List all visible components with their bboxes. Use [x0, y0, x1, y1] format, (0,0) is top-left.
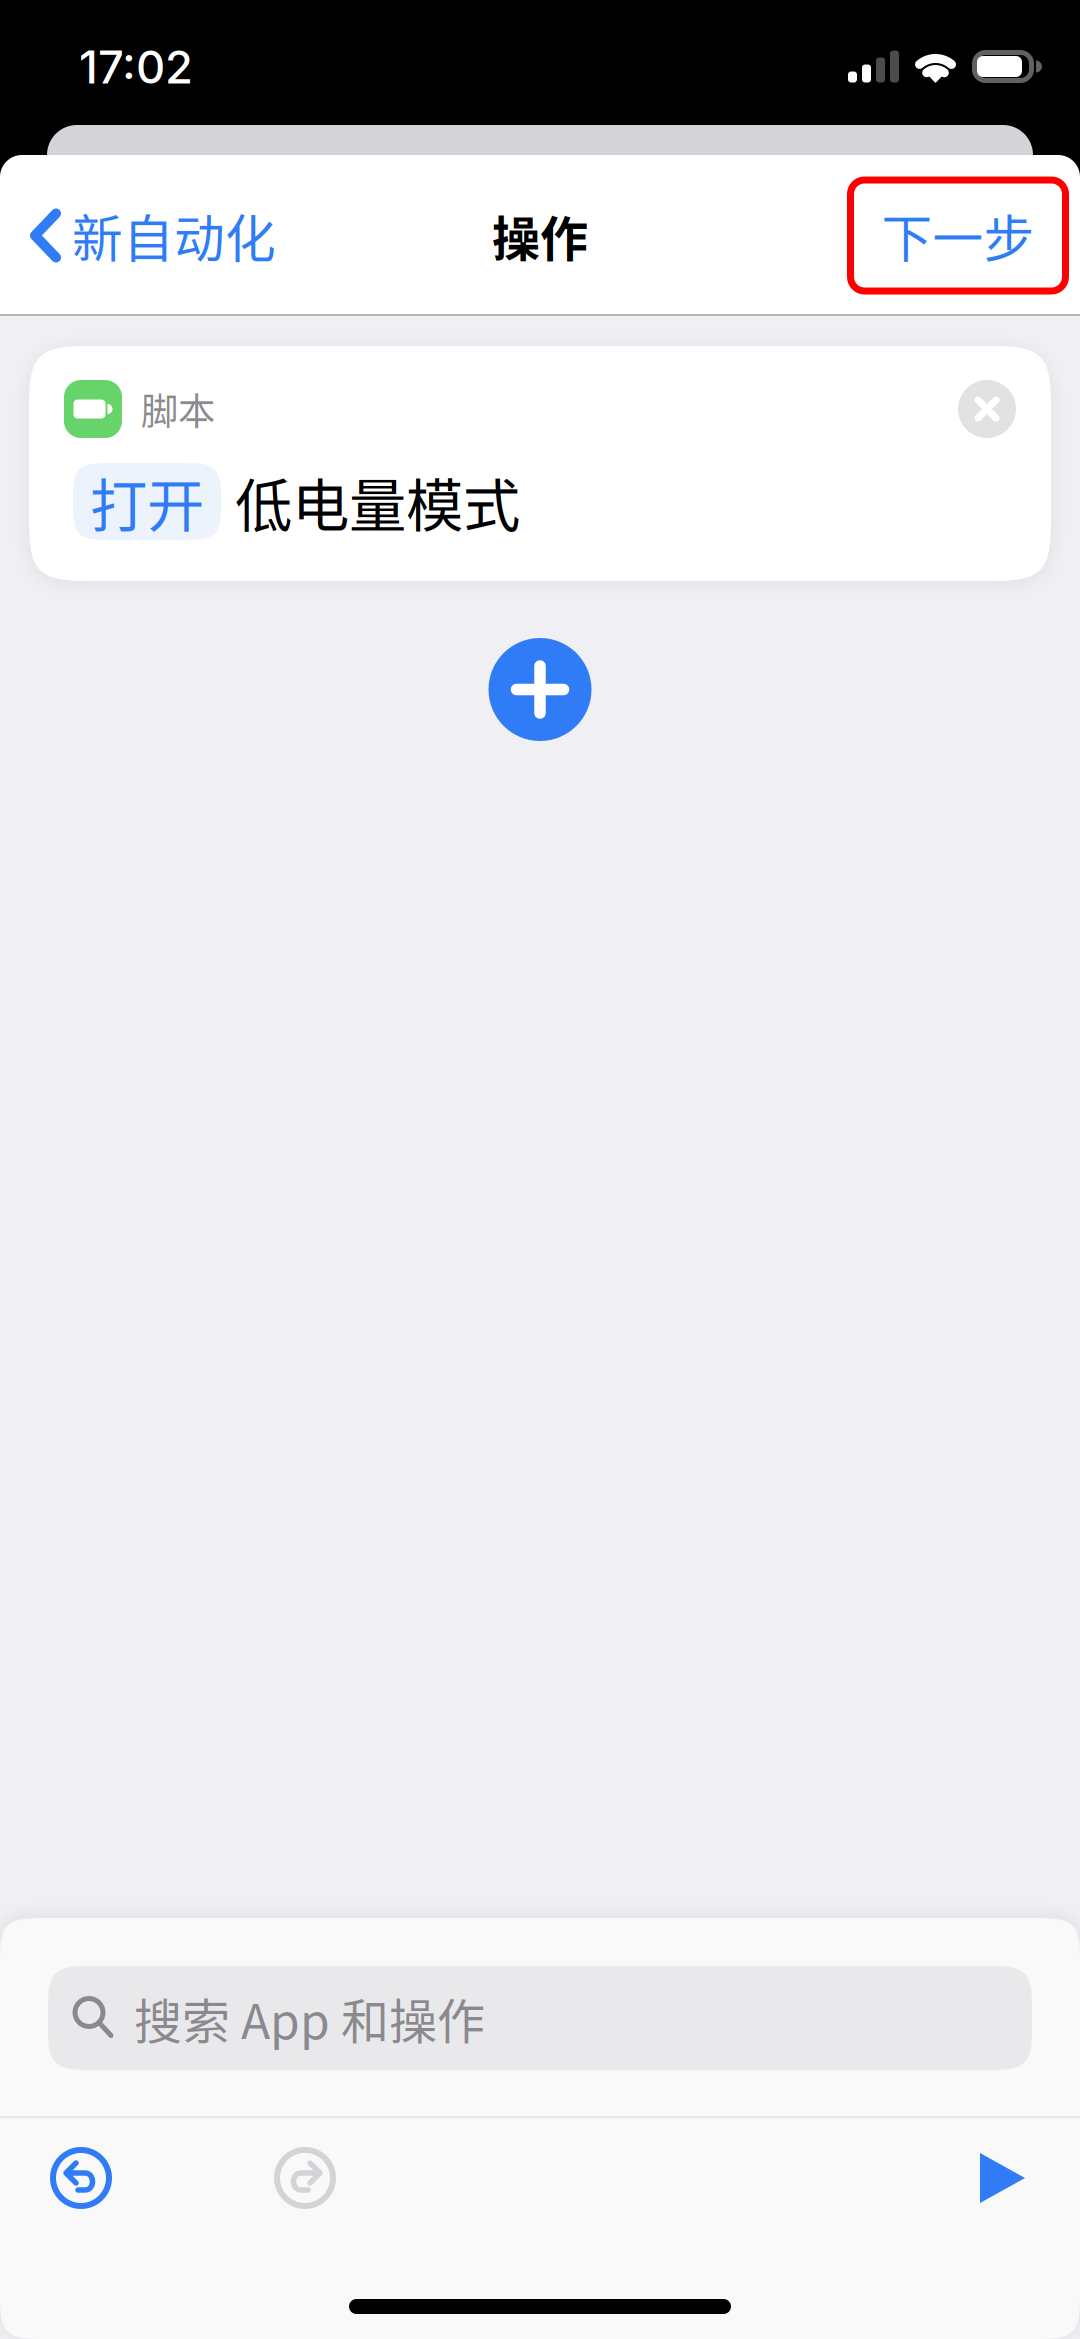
staticText: 低电量模式: [235, 460, 520, 543]
button[interactable]: 重做: [274, 2147, 336, 2209]
button[interactable]: 移除操作: [958, 380, 1016, 438]
staticText: 17:02: [79, 40, 193, 94]
staticText: 脚本: [141, 382, 215, 436]
button[interactable]: 撤销: [50, 2147, 112, 2209]
staticText: 新自动化: [72, 199, 276, 272]
staticText: 打开: [90, 460, 204, 543]
button[interactable]: 新自动化: [0, 155, 296, 316]
staticText: 操作: [492, 201, 588, 270]
staticText: 搜索 App 和操作: [134, 1983, 485, 2053]
button[interactable]: 下一步: [847, 176, 1080, 294]
button[interactable]: 运行: [978, 2152, 1027, 2204]
staticText: 下一步: [881, 199, 1034, 272]
